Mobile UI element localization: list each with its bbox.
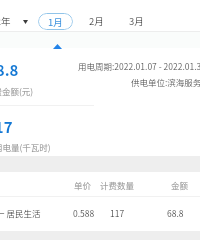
staticText: 117 xyxy=(110,207,125,219)
button[interactable]: 3月 xyxy=(125,10,148,32)
staticText: 3月 xyxy=(129,14,144,28)
staticText: 金额 xyxy=(171,179,189,191)
staticText: 电费金额(元) xyxy=(0,85,34,97)
staticText: 68.8 xyxy=(0,59,19,81)
staticText: 供电单位:滨海服务中心 xyxy=(131,76,200,88)
staticText: 1月 xyxy=(48,15,63,29)
staticText: 计费数量 xyxy=(100,179,135,191)
staticText: 单价 xyxy=(74,179,92,191)
staticText: 117 xyxy=(0,116,13,138)
staticText: 0.588 xyxy=(73,207,95,219)
staticText: 2月 xyxy=(89,14,104,28)
staticText: 用电周期:2022.01.07 - 2022.01.31 xyxy=(78,60,200,72)
button[interactable]: 1月 xyxy=(38,13,73,30)
staticText: 2022年 xyxy=(0,14,11,28)
button[interactable]: 2月 xyxy=(85,10,108,32)
staticText: 一 居民生活 xyxy=(0,207,41,219)
staticText: 用电量(千瓦时) xyxy=(0,141,51,153)
button[interactable]: 2022年 xyxy=(0,11,31,31)
staticText: 68.8 xyxy=(167,207,184,219)
